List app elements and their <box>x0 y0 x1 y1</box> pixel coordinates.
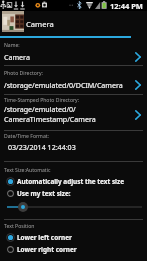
button[interactable]: Photo Directory: <box>0 66 147 94</box>
staticText: Date/Time Format: <box>4 133 49 140</box>
button[interactable]: Lower left corner <box>0 231 147 243</box>
staticText: Time-Stamped Photo Directory: <box>4 97 80 104</box>
other: Name: <box>132 51 144 63</box>
staticText: Text Size:Automatic <box>4 167 51 174</box>
staticText: Automatically adjust the text size <box>17 177 124 186</box>
staticText: /storage/emulated/0/ <box>4 104 76 114</box>
button[interactable]: Date/Time Format: <box>0 131 147 161</box>
staticText: 12:44 PM <box>110 1 143 11</box>
staticText: 03/23/2014 12:44:03 <box>8 142 76 152</box>
button[interactable]: Time-Stamped Photo Directory: <box>0 95 147 130</box>
button[interactable]: Use my text size: <box>0 187 147 199</box>
other: Photo Directory: <box>132 79 144 91</box>
other: Time-Stamped Photo Directory: <box>132 109 144 121</box>
staticText: CameraTimestamp/Camera <box>4 114 96 124</box>
button[interactable]: Name: <box>0 38 147 65</box>
button[interactable]: Lower right corner <box>0 243 147 255</box>
staticText: Photo Directory: <box>4 70 43 77</box>
staticText: Use my text size: <box>17 189 71 198</box>
staticText: Lower right corner <box>17 245 77 254</box>
staticText: /storage/emulated/0/DCIM/Camera <box>4 80 123 90</box>
staticText: Text Position <box>4 223 35 230</box>
staticText: Camera <box>4 52 30 62</box>
staticText: Lower left corner <box>17 233 72 242</box>
button[interactable]: Automatically adjust the text size <box>0 175 147 187</box>
staticText: Name: <box>4 42 20 49</box>
staticText: Camera <box>26 19 54 29</box>
